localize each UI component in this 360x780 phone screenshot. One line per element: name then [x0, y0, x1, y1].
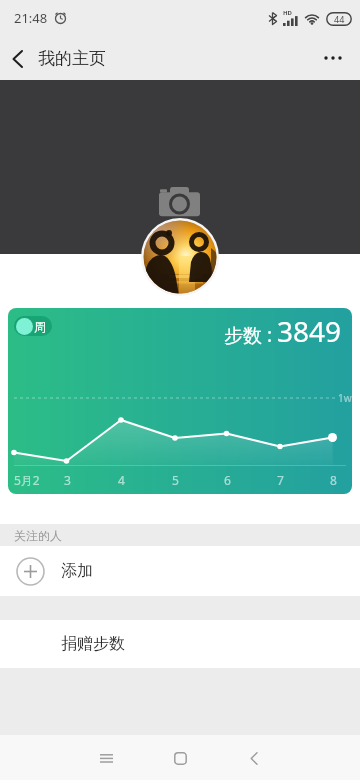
staticText: 关注的人: [14, 528, 62, 543]
staticText: 21:48: [14, 9, 48, 27]
button[interactable]: [86, 738, 126, 778]
staticText: 我的主页: [38, 48, 106, 69]
staticText: 5: [172, 472, 179, 488]
staticText: 3: [64, 472, 71, 488]
button[interactable]: 添加: [0, 546, 360, 596]
button[interactable]: 周: [14, 316, 52, 336]
button[interactable]: [322, 49, 344, 67]
staticText: 7: [277, 472, 284, 488]
button[interactable]: 我的主页: [0, 48, 106, 69]
staticText: 3849: [277, 312, 342, 350]
staticText: 步数 :: [224, 322, 277, 348]
button[interactable]: 捐赠步数: [0, 620, 360, 668]
staticText: 周: [34, 319, 46, 334]
staticText: 捐赠步数: [61, 634, 125, 654]
staticText: HD: [283, 9, 292, 17]
staticText: 5月2: [14, 472, 40, 488]
button[interactable]: [160, 738, 200, 778]
button[interactable]: [234, 738, 274, 778]
staticText: 8: [330, 472, 337, 488]
staticText: 1w: [338, 391, 352, 405]
staticText: 4: [118, 472, 125, 488]
staticText: 添加: [61, 561, 93, 581]
staticText: 44: [334, 13, 345, 25]
staticText: 6: [224, 472, 231, 488]
